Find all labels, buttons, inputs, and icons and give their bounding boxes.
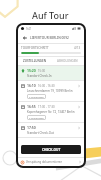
button[interactable]: 16:10 [18,81,84,101]
staticText: Auf Tour [32,9,69,21]
button[interactable]: 15:20 [18,66,84,80]
button[interactable]: ZUSTELLUNGEN [18,57,51,65]
button[interactable]: Details [77,126,81,130]
staticText: LIEFERTOUR BERLIN 0092 [30,36,69,40]
staticText: 16:10 [27,83,36,88]
button[interactable]: Details [77,105,81,109]
staticText: ZUSTELLUNGEN [23,59,47,63]
staticText: 15:20 [27,68,36,73]
staticText: 16:00 - 16:30 [38,84,55,88]
button[interactable]: Back [18,32,84,43]
button[interactable]: Details [77,84,81,88]
staticText: Standort Check-In [27,74,52,78]
staticText: 17:00 - 17:30 [38,105,55,109]
staticText: Kopenhagener Str. 72, 13407 Berlin [27,110,75,114]
staticText: Verspätung dokumentieren [26,160,63,164]
button[interactable]: CHECK-OUT [21,145,81,154]
staticText: Standort Check-Out [27,131,54,135]
staticText: ABHOLUNGEN [57,59,78,63]
button[interactable]: 17:50 [18,123,84,137]
button[interactable]: 2 Sendungen [27,94,46,99]
staticText: TOURFORTSCHRITT [21,46,49,50]
staticText: 2 Sendungen [29,95,44,98]
button[interactable]: ABHOLUNGEN [51,57,84,65]
staticText: 4/13 [74,46,81,50]
staticText: Leuschnerdamm 19, 10999 Berlin [27,89,73,93]
button[interactable]: 2 Sendungen [27,115,46,120]
staticText: CHECK-OUT [42,148,61,152]
button[interactable]: 16:55 [18,102,84,122]
staticText: 16:55 [27,104,36,109]
staticText: 2 Sendungen [29,116,44,119]
button[interactable]: Verspätung dokumentieren [18,158,84,166]
button[interactable]: Back [21,34,28,41]
staticText: 17:50 [27,125,36,130]
staticText: 9:41 [26,27,32,31]
staticText: 15:00 [38,69,46,73]
